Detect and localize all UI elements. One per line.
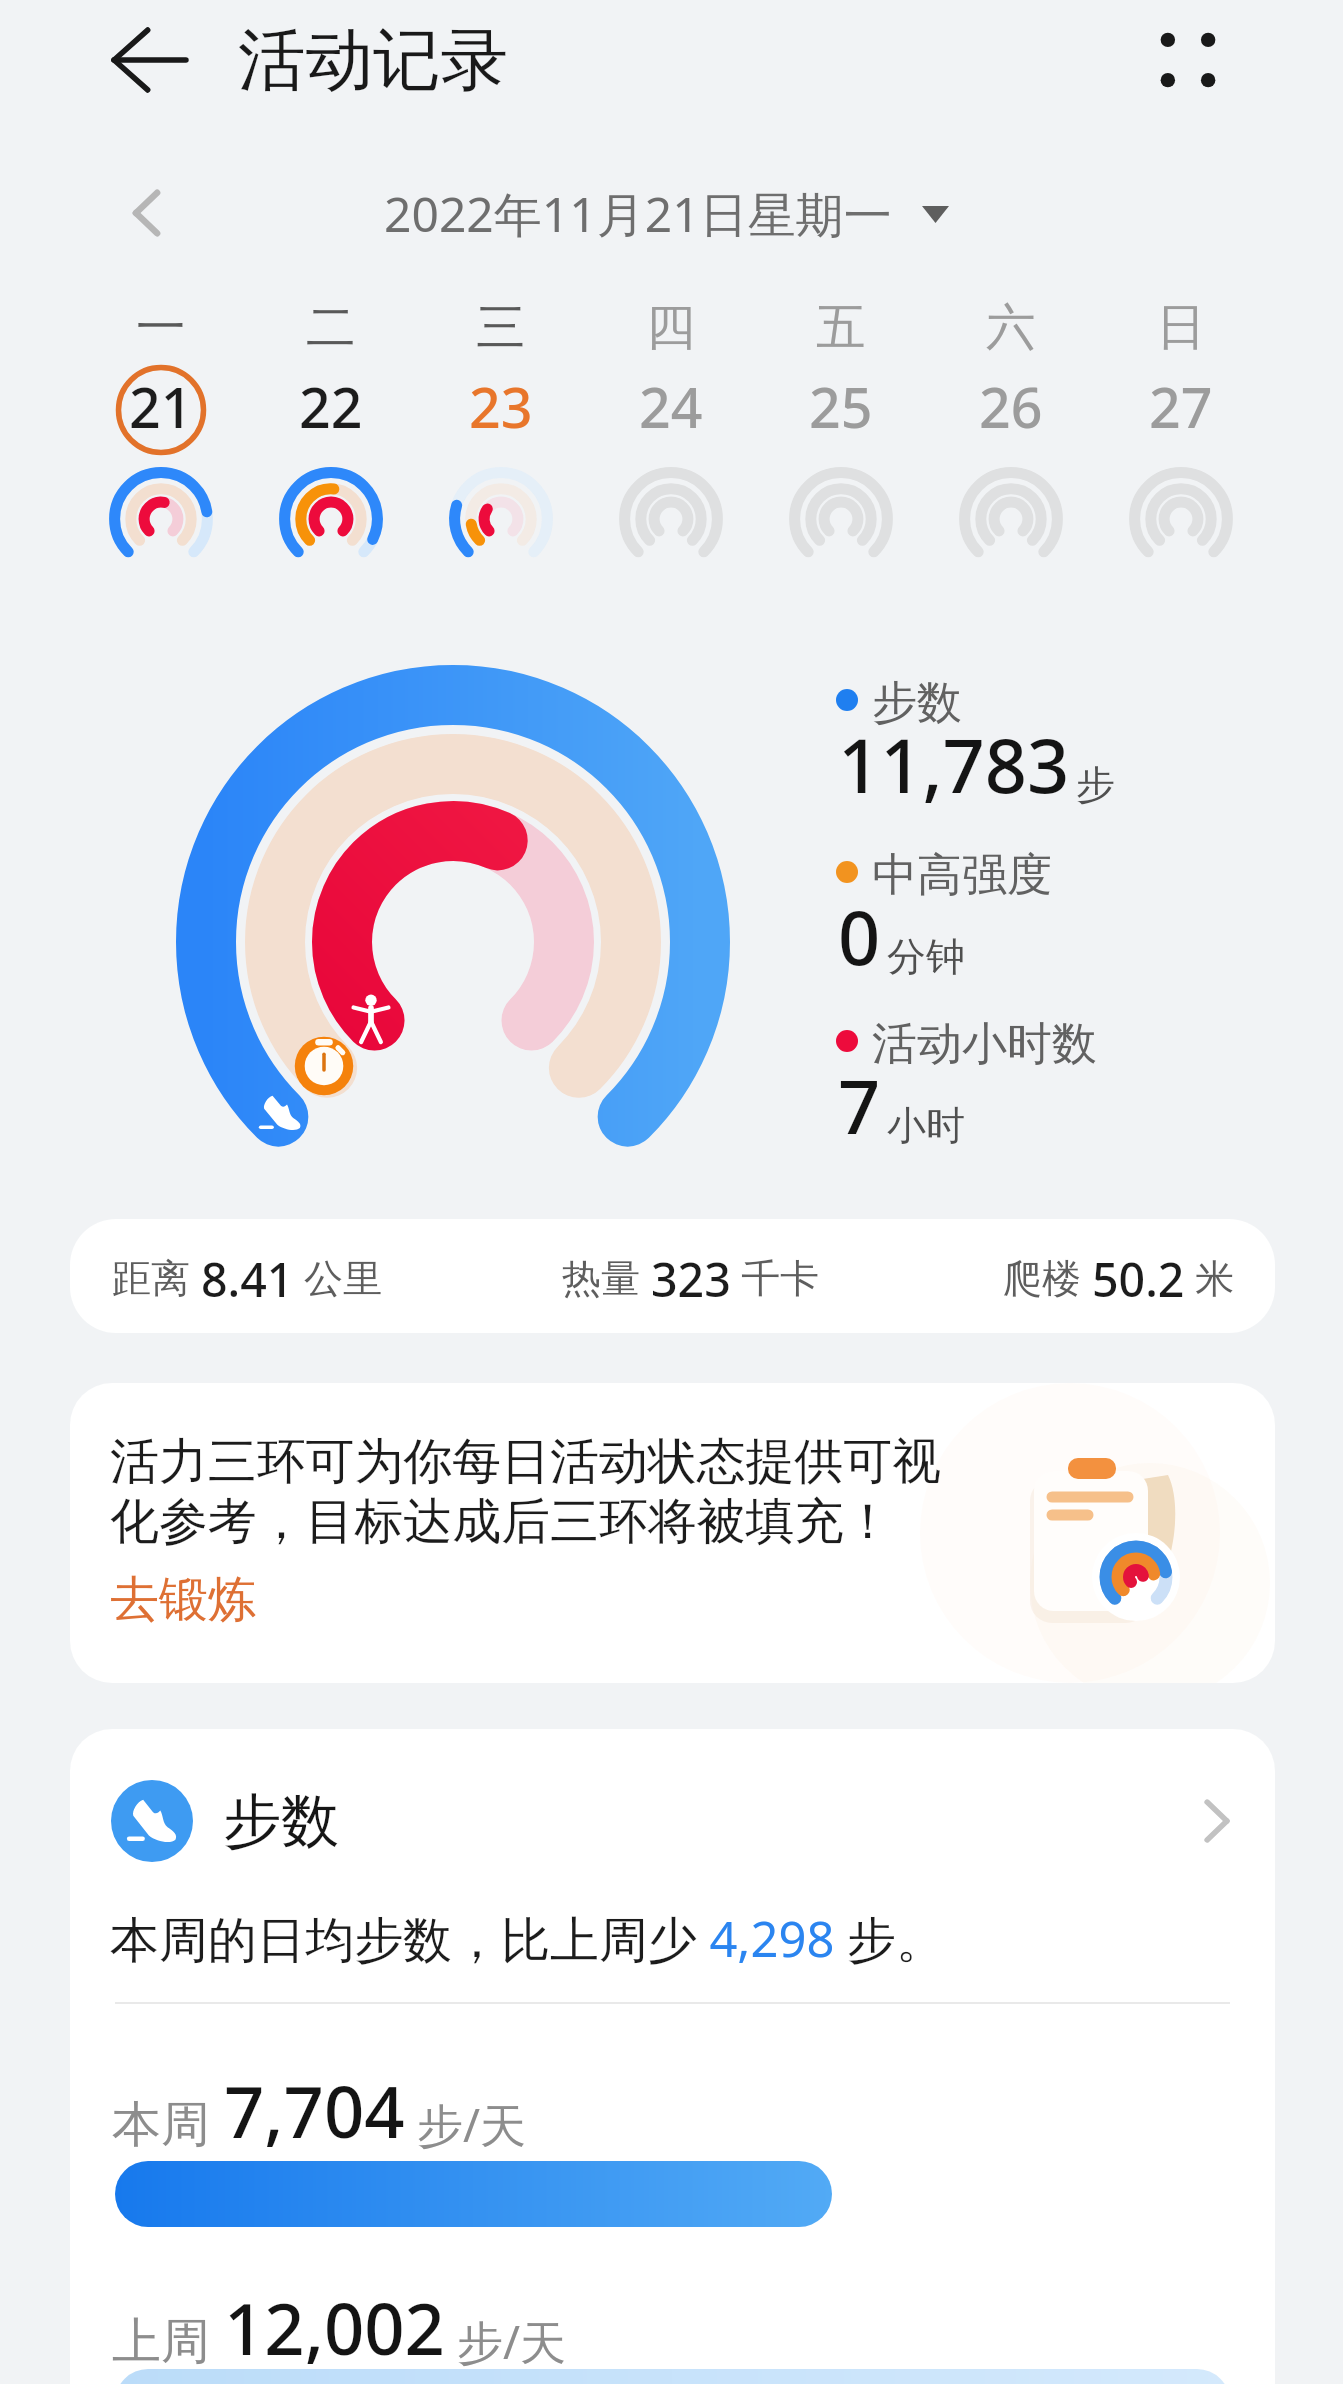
staticText: 22 — [299, 369, 363, 445]
staticText: 去锻炼 — [110, 1569, 257, 1631]
staticText: 六 — [986, 296, 1036, 358]
staticText: 本周的日均步数，比上周少 4,298 步。 — [110, 1905, 945, 1972]
staticText: 活动记录 — [238, 18, 508, 103]
button[interactable]: 日 — [1096, 288, 1266, 568]
staticText: 步数 — [223, 1785, 339, 1858]
staticText: 步 — [1076, 760, 1115, 809]
button[interactable]: 活力三环可为你每日活动状态提供可视 化参考，目标达成后三环将被填充！ — [70, 1383, 1275, 1683]
staticText: 二 — [306, 296, 356, 358]
staticText: 步/天 — [457, 2310, 566, 2373]
staticText: 2022年11月21日星期一 — [384, 181, 892, 247]
staticText: 距离 — [112, 1254, 191, 1303]
staticText: 千卡 — [741, 1254, 820, 1303]
button[interactable]: Back — [84, 0, 216, 120]
button[interactable]: 六 — [926, 288, 1096, 568]
staticText: 27 — [1149, 369, 1213, 445]
staticText: 四 — [646, 296, 696, 358]
staticText: 23 — [469, 369, 533, 445]
button[interactable]: 2022年11月21日星期一 — [384, 181, 949, 247]
button[interactable]: 一 — [76, 288, 246, 568]
staticText: 21 — [129, 369, 193, 445]
staticText: 步/天 — [417, 2093, 526, 2156]
staticText: 活动小时数 — [872, 1016, 1097, 1073]
staticText: 热量 — [562, 1254, 641, 1303]
staticText: 爬楼 — [1003, 1254, 1082, 1303]
staticText: 日 — [1156, 296, 1206, 358]
staticText: 24 — [639, 369, 703, 445]
staticText: 分钟 — [887, 932, 965, 981]
button[interactable]: 三 — [416, 288, 586, 568]
button[interactable]: 五 — [756, 288, 926, 568]
staticText: 本周 — [112, 2094, 210, 2156]
staticText: 323 — [651, 1247, 731, 1310]
staticText: 小时 — [887, 1101, 965, 1150]
button[interactable]: 四 — [586, 288, 756, 568]
staticText: 公里 — [304, 1254, 383, 1303]
staticText: 上周 — [112, 2311, 210, 2373]
staticText: 一 — [136, 296, 186, 358]
staticText: 0 — [838, 886, 881, 987]
staticText: 三 — [476, 296, 526, 358]
staticText: 7,704 — [224, 2063, 405, 2159]
staticText: 活力三环可为你每日活动状态提供可视 化参考，目标达成后三环将被填充！ — [110, 1431, 942, 1553]
button[interactable]: More options — [1128, 0, 1248, 120]
staticText: 26 — [979, 369, 1043, 445]
staticText: 11,783 — [838, 714, 1070, 815]
button[interactable]: 距离 — [70, 1219, 1275, 1333]
staticText: 7 — [838, 1055, 881, 1156]
button[interactable]: 二 — [246, 288, 416, 568]
staticText: 50.2 — [1092, 1247, 1185, 1310]
staticText: 25 — [809, 369, 873, 445]
button[interactable]: 步数 — [70, 1751, 1275, 1891]
staticText: 8.41 — [201, 1247, 294, 1310]
button[interactable]: Previous day — [92, 160, 202, 265]
staticText: 步数 — [872, 675, 962, 732]
staticText: 中高强度 — [872, 847, 1052, 904]
staticText: 米 — [1195, 1254, 1235, 1303]
staticText: 五 — [816, 296, 866, 358]
staticText: 12,002 — [224, 2280, 445, 2376]
